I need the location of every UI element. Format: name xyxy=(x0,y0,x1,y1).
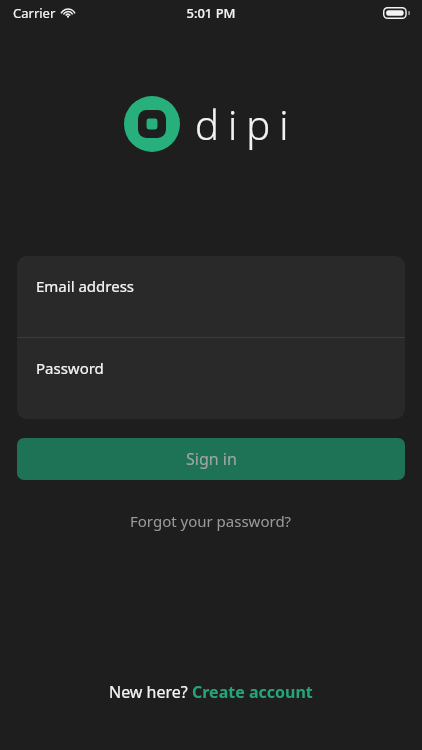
staticText: Email address xyxy=(36,276,135,296)
other: dipi logo xyxy=(124,96,180,152)
staticText: Sign in xyxy=(186,448,237,470)
staticText: Password xyxy=(36,358,104,378)
staticText: Forgot your password? xyxy=(130,511,292,531)
button[interactable]: Create account xyxy=(192,681,313,703)
button[interactable]: Password xyxy=(17,338,405,419)
staticText: 5:01 PM xyxy=(186,4,236,22)
staticText: dipi xyxy=(195,97,298,151)
staticText: New here? xyxy=(109,681,192,703)
staticText: Carrier xyxy=(13,4,56,22)
button[interactable]: Email address xyxy=(17,256,405,337)
staticText: Create account xyxy=(192,681,313,703)
button[interactable]: Forgot your password? xyxy=(120,506,302,536)
button[interactable]: Sign in xyxy=(17,438,405,480)
